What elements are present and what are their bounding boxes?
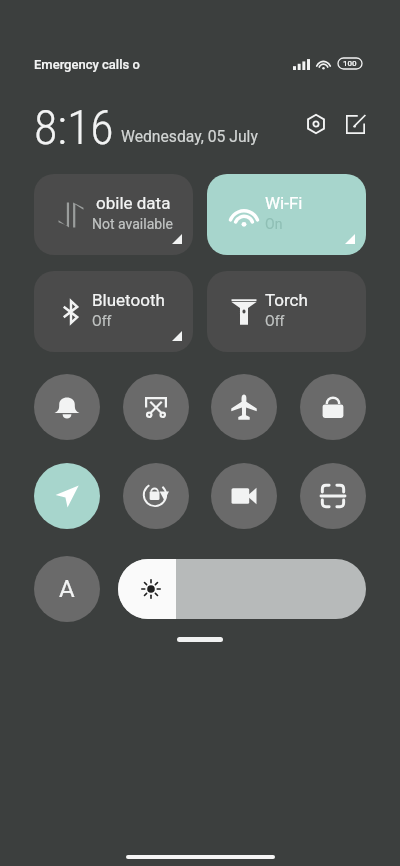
button[interactable]: Location	[34, 463, 100, 529]
staticText: obile data	[96, 193, 171, 213]
button[interactable]: Silent	[34, 374, 100, 440]
button[interactable]: Wi-Fi	[207, 174, 366, 255]
staticText: On	[265, 216, 283, 232]
staticText: Emergency calls o	[34, 57, 140, 72]
staticText: Wi-Fi	[265, 193, 303, 213]
button[interactable]: Screenshot	[123, 374, 189, 440]
button[interactable]: Record screen	[211, 463, 277, 529]
staticText: Off	[92, 313, 112, 329]
button[interactable]: obile data	[34, 174, 193, 255]
staticText: Off	[265, 313, 285, 329]
staticText: Torch	[265, 290, 308, 310]
button[interactable]: Scan	[300, 463, 366, 529]
button[interactable]: Airplane mode	[211, 374, 277, 440]
staticText: 100	[343, 59, 357, 68]
staticText: Bluetooth	[92, 290, 165, 310]
button[interactable]: Bluetooth	[34, 271, 193, 352]
button[interactable]: Lock	[300, 374, 366, 440]
staticText: 8:16	[34, 99, 114, 149]
staticText: A	[59, 575, 75, 603]
button[interactable]	[118, 559, 366, 619]
button[interactable]: Settings	[299, 107, 333, 141]
staticText: Wednesday, 05 July	[121, 127, 258, 145]
button[interactable]: Edit	[338, 107, 372, 141]
staticText: Not available	[92, 216, 173, 232]
button[interactable]: A	[34, 556, 100, 622]
button[interactable]: Torch	[207, 271, 366, 352]
button[interactable]: Auto rotate	[123, 463, 189, 529]
